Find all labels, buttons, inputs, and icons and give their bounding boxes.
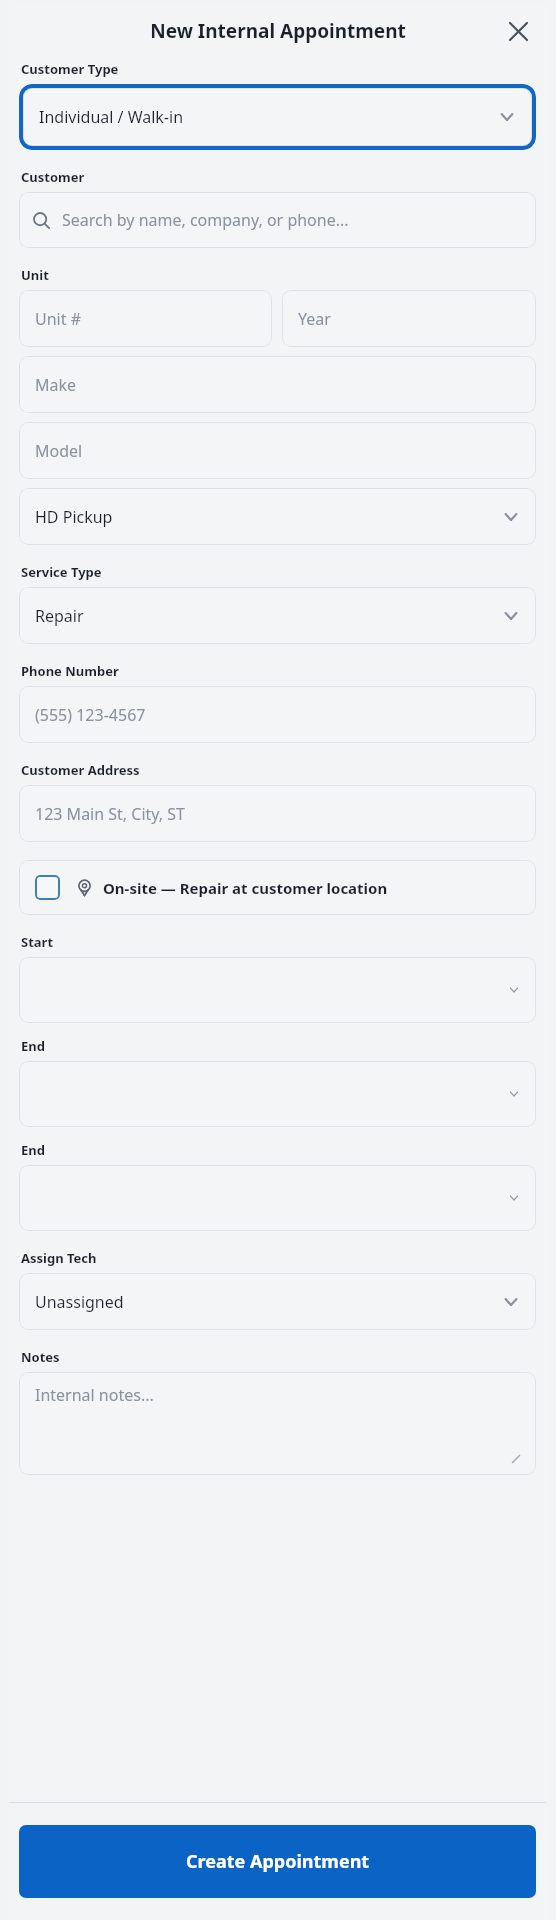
staticText: Customer Type [21, 60, 119, 78]
staticText: Customer [21, 168, 85, 186]
staticText: Make [35, 374, 77, 396]
button[interactable]: 123 Main St, City, ST [19, 785, 536, 842]
button[interactable]: Internal notes... [19, 1372, 536, 1475]
button[interactable]: On-site — Repair at customer location [19, 860, 536, 915]
staticText: Start [21, 933, 54, 951]
staticText: 123 Main St, City, ST [35, 803, 185, 825]
button[interactable]: (555) 123-4567 [19, 686, 536, 743]
staticText: Year [298, 308, 331, 330]
button[interactable]: HD Pickup [19, 488, 536, 545]
staticText: Unit # [35, 308, 81, 330]
button[interactable]: Repair [19, 587, 536, 644]
staticText: Customer Address [21, 761, 140, 779]
staticText: HD Pickup [35, 506, 113, 528]
staticText: (555) 123-4567 [35, 704, 146, 726]
staticText: Internal notes... [35, 1384, 154, 1406]
button[interactable]: Model [19, 422, 536, 479]
button[interactable]: Search by name, company, or phone... [19, 192, 536, 248]
button[interactable]: Individual / Walk-in [23, 88, 532, 146]
button[interactable]: Unassigned [19, 1273, 536, 1330]
staticText: Create Appointment [186, 1849, 370, 1874]
button[interactable] [19, 1061, 536, 1127]
staticText: New Internal Appointment [150, 18, 406, 44]
staticText: Repair [35, 605, 84, 627]
button[interactable]: Close [500, 13, 536, 49]
button[interactable]: Create Appointment [19, 1825, 536, 1898]
button[interactable]: Make [19, 356, 536, 413]
button[interactable] [19, 957, 536, 1023]
staticText: Service Type [21, 563, 102, 581]
button[interactable]: Year [282, 290, 536, 347]
staticText: Search by name, company, or phone... [62, 209, 349, 231]
button[interactable] [19, 1165, 536, 1231]
staticText: Phone Number [21, 662, 119, 680]
staticText: On-site — Repair at customer location [103, 878, 388, 898]
staticText: Unit [21, 266, 49, 284]
staticText: Unassigned [35, 1291, 124, 1313]
staticText: Model [35, 440, 83, 462]
button[interactable]: Unit # [19, 290, 272, 347]
staticText: Assign Tech [21, 1249, 97, 1267]
staticText: Individual / Walk-in [39, 106, 184, 128]
staticText: End [21, 1037, 45, 1055]
staticText: End [21, 1141, 45, 1159]
staticText: Notes [21, 1348, 60, 1366]
